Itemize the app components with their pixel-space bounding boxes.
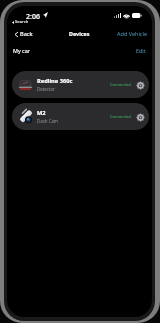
staticText: Devices — [69, 30, 90, 37]
button[interactable]: Add Vehicle — [117, 30, 147, 37]
staticText: Connected — [110, 82, 131, 88]
staticText: Redline 360c — [37, 77, 73, 85]
staticText: Connected — [110, 114, 131, 120]
button[interactable]: Device settings — [135, 80, 145, 90]
staticText: Search — [15, 19, 29, 25]
button[interactable]: Edit — [136, 47, 146, 54]
button[interactable]: M2 — [12, 103, 149, 130]
button[interactable]: Redline 360c — [12, 71, 149, 98]
staticText: Detector — [37, 86, 55, 92]
staticText: M2 — [37, 109, 46, 117]
button[interactable]: Back — [15, 30, 33, 38]
staticText: My car — [13, 47, 30, 54]
staticText: Dash Cam — [37, 118, 58, 124]
button[interactable]: Device settings — [135, 112, 145, 122]
button[interactable]: Search — [12, 19, 29, 25]
staticText: Back — [20, 30, 33, 38]
staticText: 2:06 — [26, 12, 40, 22]
